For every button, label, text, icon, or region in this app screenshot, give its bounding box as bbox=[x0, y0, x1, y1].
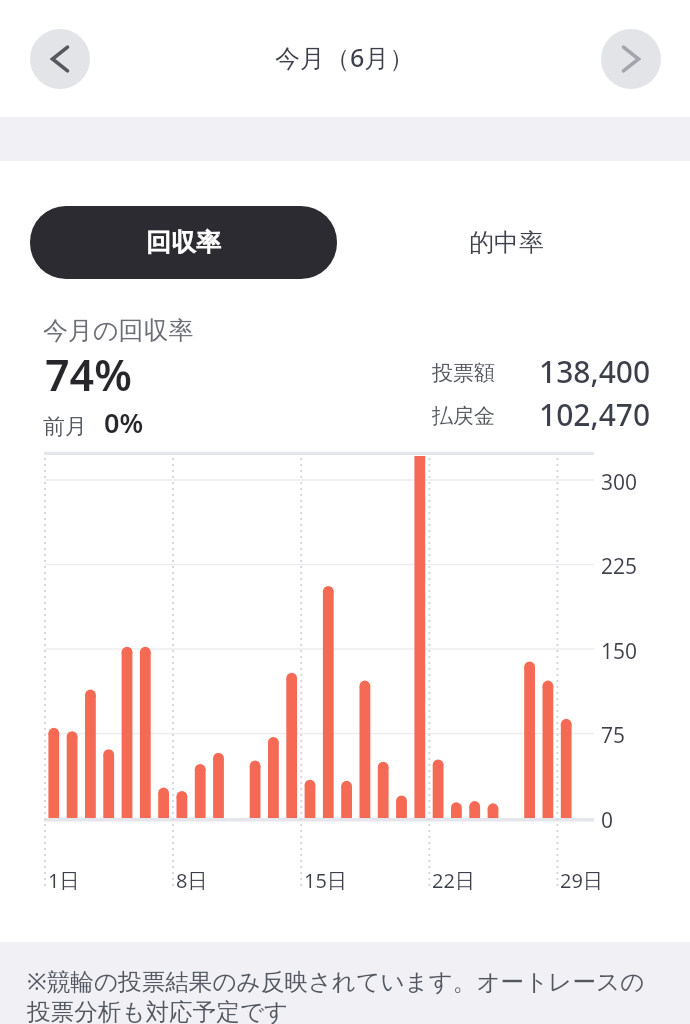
button[interactable]: Next month bbox=[601, 29, 661, 89]
staticText: 回収率 bbox=[146, 227, 221, 258]
staticText: 22日 bbox=[432, 867, 475, 894]
staticText: 1日 bbox=[48, 867, 80, 894]
staticText: 300 bbox=[601, 468, 638, 497]
staticText: 29日 bbox=[560, 867, 603, 894]
staticText: 今月（6月） bbox=[275, 40, 415, 74]
staticText: 102,470 bbox=[539, 394, 651, 435]
staticText: 今月の回収率 bbox=[43, 315, 194, 346]
staticText: 投票額 bbox=[432, 360, 495, 386]
staticText: 前月 bbox=[43, 413, 87, 441]
staticText: 74% bbox=[45, 345, 132, 404]
staticText: 的中率 bbox=[469, 227, 544, 258]
staticText: 138,400 bbox=[539, 351, 651, 392]
staticText: ※競輪の投票結果のみ反映されています。オートレースの投票分析も対応予定です bbox=[27, 965, 662, 1024]
staticText: 75 bbox=[601, 721, 626, 750]
staticText: 150 bbox=[601, 637, 638, 666]
button[interactable]: Previous month bbox=[30, 29, 90, 89]
staticText: 0 bbox=[601, 806, 614, 835]
staticText: 0% bbox=[104, 404, 144, 441]
staticText: 払戻金 bbox=[432, 403, 495, 429]
button[interactable]: 回収率 bbox=[30, 206, 337, 279]
staticText: 15日 bbox=[304, 867, 347, 894]
staticText: 225 bbox=[601, 552, 638, 581]
staticText: 8日 bbox=[176, 867, 208, 894]
button[interactable]: 的中率 bbox=[353, 206, 660, 279]
